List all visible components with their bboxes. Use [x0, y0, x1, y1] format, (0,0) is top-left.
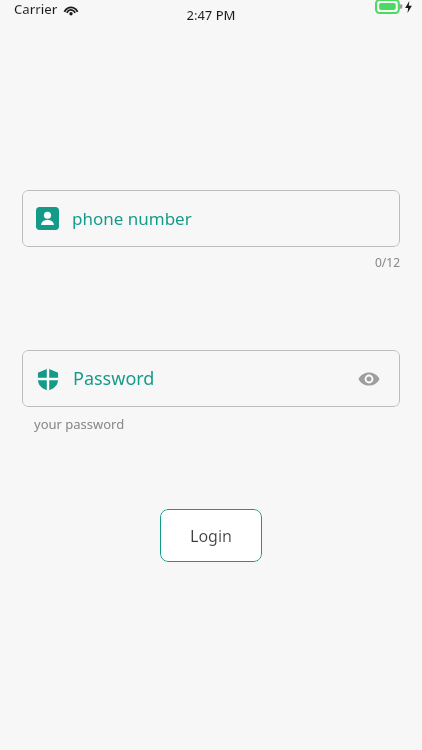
- button[interactable]: Login: [160, 509, 262, 562]
- staticText: 2:47 PM: [0, 6, 422, 24]
- staticText: your password: [34, 415, 125, 433]
- staticText: Carrier: [14, 0, 58, 18]
- button[interactable]: Show password: [352, 362, 386, 396]
- button[interactable]: Password: [22, 350, 400, 407]
- staticText: phone number: [72, 207, 192, 230]
- button[interactable]: phone number: [22, 190, 400, 247]
- staticText: 0/12: [0, 254, 400, 270]
- staticText: Login: [190, 525, 232, 547]
- staticText: Password: [73, 366, 155, 391]
